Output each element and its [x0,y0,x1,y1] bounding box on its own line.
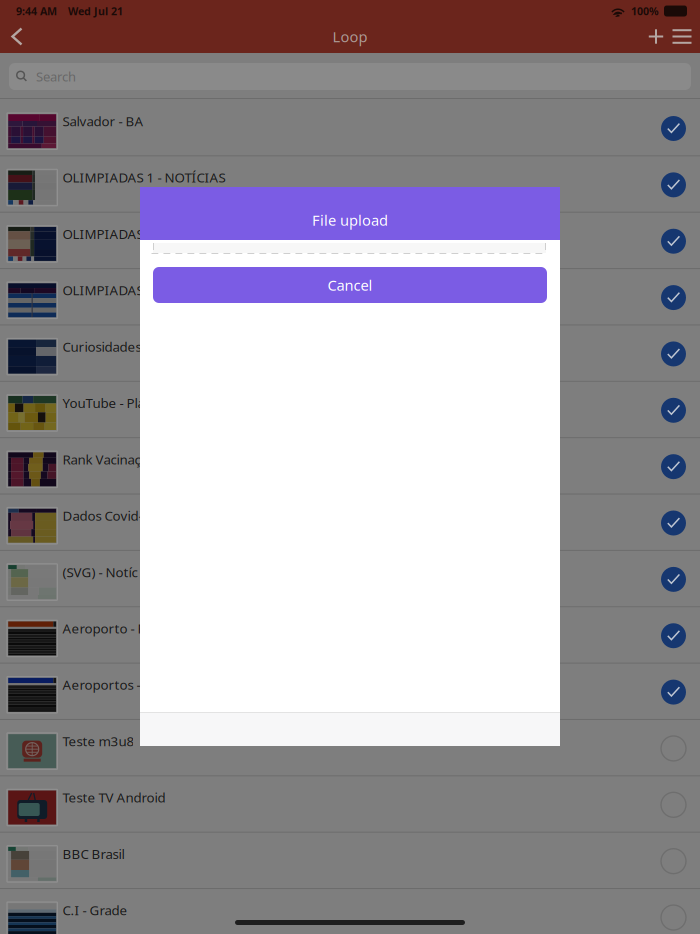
button[interactable]: Dados Covid- [0,494,700,551]
staticText: 9:44 AM [16,4,57,18]
staticText: BBC Brasil [62,845,124,863]
staticText: Search [36,68,76,85]
staticText: Aeroportos - [62,676,143,694]
staticText: Curiosidades [62,337,141,356]
button[interactable]: (SVG) - Notíc [0,551,700,607]
button[interactable]: Back [0,20,35,52]
button[interactable]: Search [9,63,691,90]
staticText: OLIMPIADAS [62,281,143,299]
staticText: (SVG) - Notíc [62,563,137,581]
button[interactable]: OLIMPIADAS [0,213,700,269]
staticText: Dados Covid- [62,506,142,525]
button[interactable]: OLIMPIADAS 1 - NOTÍCIAS [0,156,700,213]
button[interactable]: Teste m3u8 [0,720,700,776]
staticText: Rank Vacinaç [62,450,140,468]
staticText: C.I - Grade [62,901,127,919]
staticText: Salvador - BA [62,112,143,130]
button[interactable]: OLIMPIADAS [0,269,700,325]
button[interactable]: Salvador - BA [0,100,700,156]
staticText: Teste m3u8 [62,732,134,750]
button[interactable]: Menu [665,20,700,53]
staticText: File upload [312,210,388,230]
button[interactable]: YouTube - Pla [0,382,700,438]
staticText: OLIMPIADAS [62,225,143,243]
staticText: OLIMPIADAS 1 - NOTÍCIAS [62,168,225,187]
button[interactable]: BBC Brasil [0,833,700,889]
staticText: Teste TV Android [62,788,165,806]
button[interactable]: Teste TV Android [0,776,700,833]
staticText: YouTube - Pla [62,394,144,412]
staticText: Cancel [327,275,372,295]
button[interactable]: Rank Vacinaç [0,438,700,495]
button[interactable]: Aeroportos - [0,664,700,720]
button[interactable]: C.I - Grade [0,889,700,934]
staticText: Aeroporto - F [62,619,144,637]
staticText: Loop [332,26,367,46]
button[interactable]: Add [639,20,665,52]
staticText: 100% [631,4,659,18]
button[interactable]: Curiosidades [0,325,700,382]
button[interactable]: Cancel [140,254,560,303]
button[interactable]: Aeroporto - F [0,607,700,664]
staticText: Wed Jul 21 [68,4,123,18]
